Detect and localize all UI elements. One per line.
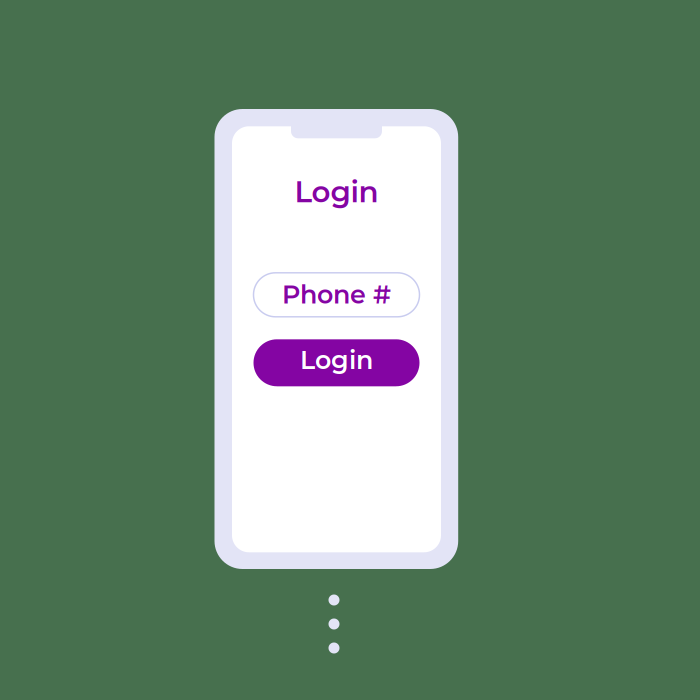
staticText: Login <box>300 344 373 375</box>
staticText: Login <box>294 174 378 210</box>
staticText: Phone # <box>282 279 391 310</box>
button[interactable]: Phone # <box>253 273 419 317</box>
button[interactable]: Login <box>253 339 419 386</box>
